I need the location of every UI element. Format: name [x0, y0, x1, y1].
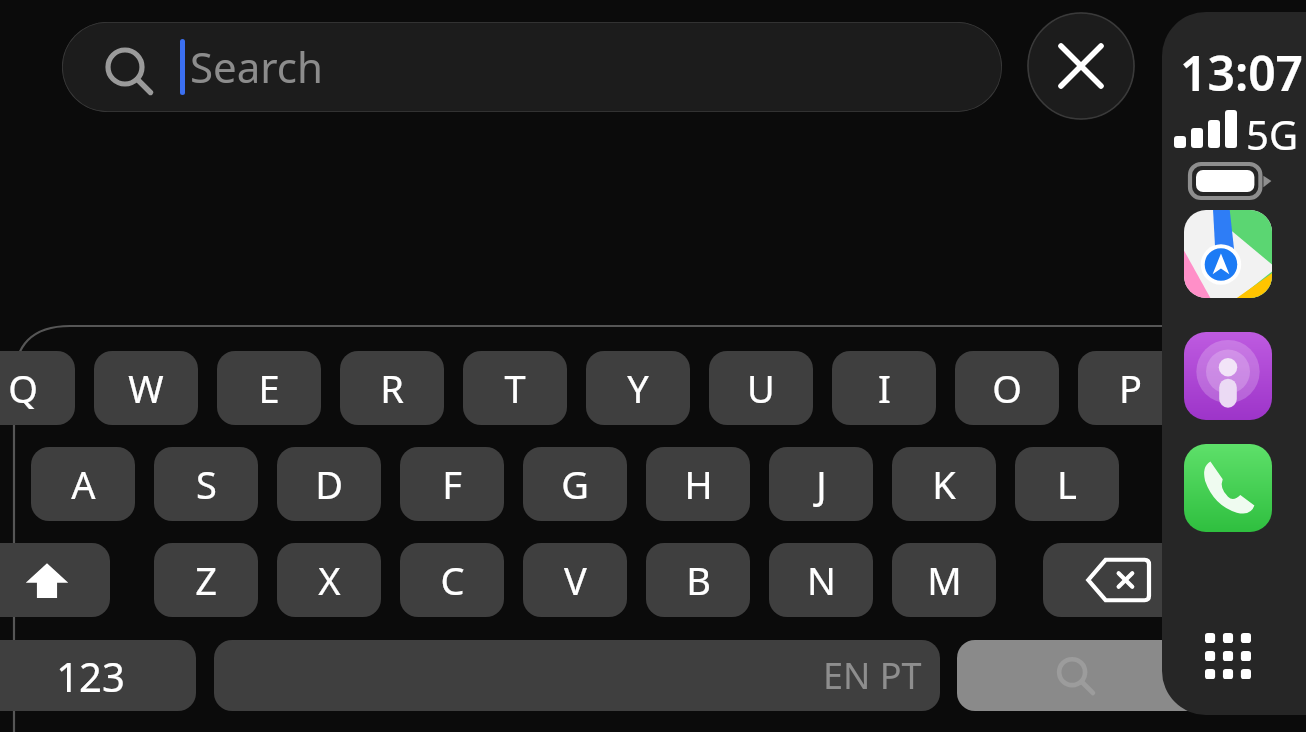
button[interactable]: N	[769, 543, 873, 617]
button[interactable]: Close	[1027, 12, 1135, 120]
staticText: Y	[627, 362, 649, 414]
button[interactable]: M	[892, 543, 996, 617]
staticText: 5G	[1246, 107, 1298, 161]
button[interactable]: C	[400, 543, 504, 617]
staticText: I	[878, 362, 891, 414]
button[interactable]: Shift	[0, 543, 110, 617]
button[interactable]: S	[154, 447, 258, 521]
button[interactable]: Q	[0, 351, 75, 425]
button[interactable]: V	[523, 543, 627, 617]
staticText: L	[1057, 458, 1077, 510]
button[interactable]: R	[340, 351, 444, 425]
staticText: Z	[195, 554, 217, 606]
button[interactable]: P	[1078, 351, 1182, 425]
button[interactable]: B	[646, 543, 750, 617]
staticText: V	[564, 554, 587, 606]
staticText: E	[258, 362, 280, 414]
staticText: H	[684, 458, 713, 510]
staticText: 13:07	[1180, 40, 1304, 105]
button[interactable]: H	[646, 447, 750, 521]
button[interactable]: Y	[586, 351, 690, 425]
staticText: S	[196, 458, 217, 510]
staticText: G	[561, 458, 589, 510]
button[interactable]: W	[94, 351, 198, 425]
button[interactable]: E	[217, 351, 321, 425]
staticText: O	[992, 362, 1022, 414]
button[interactable]: Phone	[1184, 444, 1272, 532]
button[interactable]: 123	[0, 640, 196, 711]
button[interactable]: K	[892, 447, 996, 521]
button[interactable]: F	[400, 447, 504, 521]
button[interactable]: O	[955, 351, 1059, 425]
staticText: U	[747, 362, 775, 414]
staticText: EN PT	[823, 651, 922, 700]
button[interactable]: T	[463, 351, 567, 425]
button[interactable]: I	[832, 351, 936, 425]
staticText: 123	[56, 649, 125, 703]
staticText: C	[440, 554, 465, 606]
staticText: N	[807, 554, 836, 606]
staticText: B	[686, 554, 711, 606]
button[interactable]: L	[1015, 447, 1119, 521]
staticText: D	[315, 458, 343, 510]
staticText: K	[932, 458, 956, 510]
button[interactable]: Search	[62, 22, 1002, 112]
button[interactable]: All apps	[1192, 620, 1264, 692]
staticText: M	[927, 554, 962, 606]
staticText: A	[71, 458, 96, 510]
staticText: J	[816, 458, 827, 510]
staticText: W	[128, 362, 164, 414]
staticText: P	[1119, 362, 1142, 414]
staticText: Q	[8, 362, 38, 414]
button[interactable]: U	[709, 351, 813, 425]
button[interactable]: Z	[154, 543, 258, 617]
staticText: R	[380, 362, 404, 414]
staticText: X	[318, 554, 341, 606]
button[interactable]: X	[277, 543, 381, 617]
button[interactable]: Maps	[1184, 210, 1272, 298]
button[interactable]: Space	[214, 640, 940, 711]
button[interactable]: Podcasts	[1184, 332, 1272, 420]
button[interactable]: A	[31, 447, 135, 521]
button[interactable]: G	[523, 447, 627, 521]
button[interactable]: D	[277, 447, 381, 521]
staticText: Search	[190, 38, 323, 95]
staticText: F	[442, 458, 462, 510]
staticText: T	[504, 362, 526, 414]
button[interactable]: Backspace	[1043, 543, 1193, 617]
button[interactable]: J	[769, 447, 873, 521]
button[interactable]: Search	[957, 640, 1207, 711]
